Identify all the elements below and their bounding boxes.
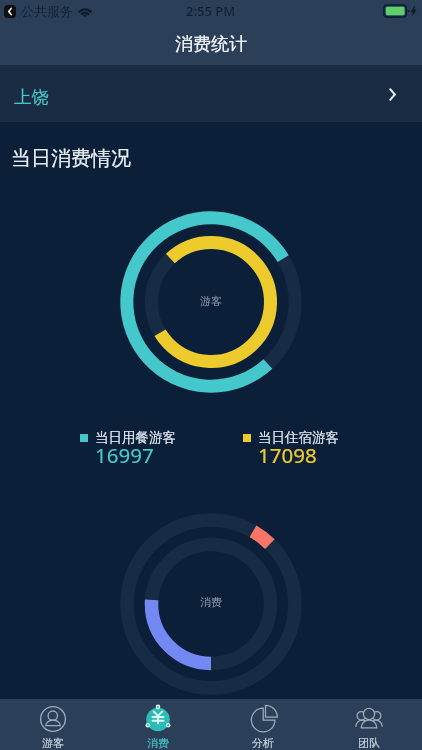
staticText: 上饶: [14, 86, 49, 108]
button[interactable]: 游客: [0, 699, 105, 750]
other: Back to 公共服务: [4, 5, 16, 18]
staticText: 当日住宿游客: [258, 429, 339, 446]
staticText: 当日用餐游客: [95, 429, 176, 446]
staticText: 团队: [358, 736, 380, 750]
staticText: 游客: [200, 294, 222, 308]
staticText: 游客: [42, 736, 64, 750]
button[interactable]: 上饶: [0, 65, 422, 122]
other: Change city: [389, 88, 396, 101]
staticText: 2:55 PM: [186, 2, 236, 20]
button[interactable]: 团队: [316, 699, 422, 750]
staticText: 16997: [95, 441, 154, 469]
staticText: 公共服务: [21, 3, 73, 19]
button[interactable]: 消费: [105, 699, 210, 750]
staticText: 分析: [252, 736, 274, 750]
staticText: 消费统计: [175, 33, 247, 56]
staticText: 消费: [200, 595, 222, 609]
staticText: 当日消费情况: [11, 146, 131, 171]
staticText: 消费: [147, 736, 169, 750]
staticText: 17098: [258, 441, 317, 469]
button[interactable]: 分析: [210, 699, 316, 750]
